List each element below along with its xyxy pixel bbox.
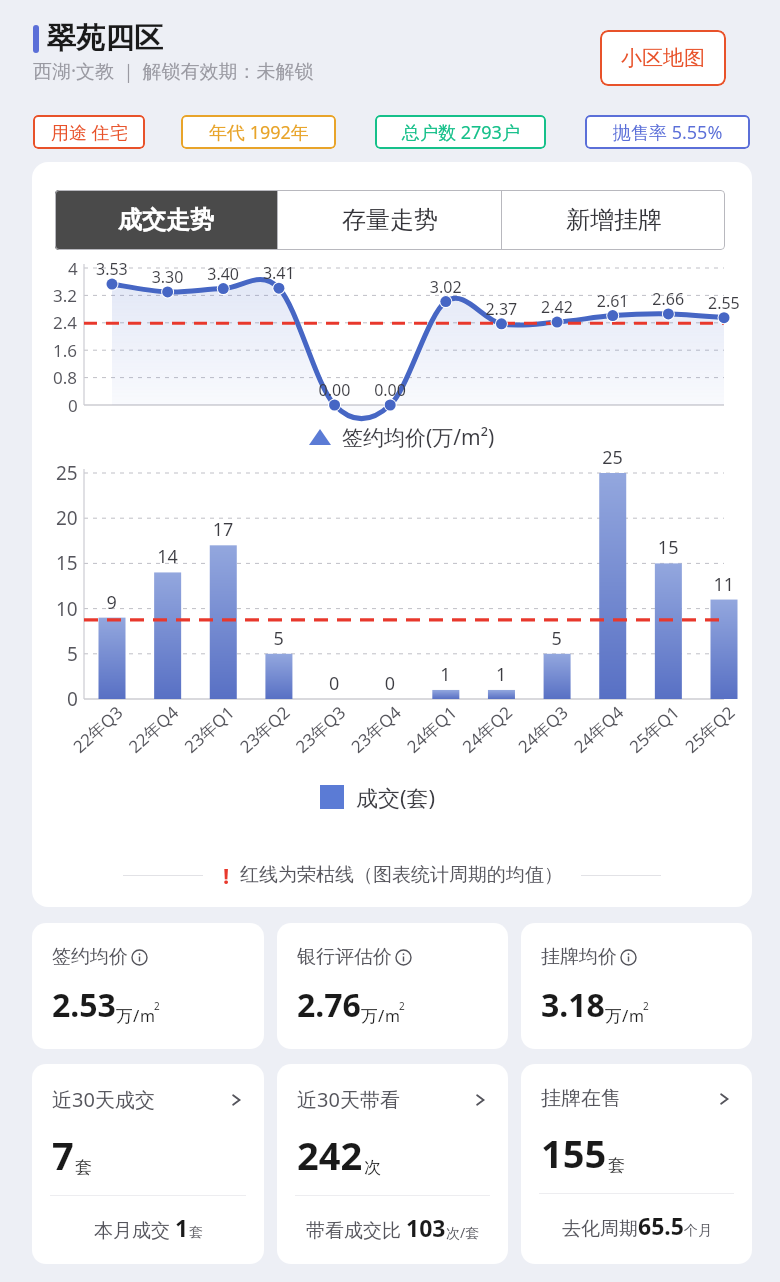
staticText: 红线为荣枯线（图表统计周期的均值） <box>240 863 563 887</box>
staticText: 2 <box>643 999 649 1013</box>
staticText: 1 <box>175 1212 189 1243</box>
staticText: 用途 住宅 <box>51 120 128 145</box>
button[interactable]: 用途 住宅 <box>33 115 145 149</box>
staticText: 套 <box>608 1155 625 1176</box>
staticText: 次/套 <box>446 1223 480 1242</box>
staticText: m <box>629 1005 644 1027</box>
other: 查看更多 <box>716 1091 732 1107</box>
button[interactable]: 银行评估价 <box>277 923 508 1049</box>
staticText: 抛售率 5.55% <box>613 120 723 145</box>
button[interactable]: 挂牌均价 <box>521 923 752 1049</box>
button[interactable]: 存量走势 <box>278 190 501 250</box>
button[interactable]: 近30天成交 <box>32 1064 264 1264</box>
staticText: 103 <box>406 1212 446 1243</box>
staticText: 小区地图 <box>621 45 705 71</box>
staticText: 万/ <box>361 1004 385 1027</box>
button[interactable]: 新增挂牌 <box>502 190 725 250</box>
staticText: 套 <box>75 1157 92 1178</box>
staticText: 近30天成交 <box>52 1086 155 1113</box>
staticText: 2.76 <box>297 983 361 1027</box>
staticText: 万/ <box>605 1004 629 1027</box>
staticText: 3.18 <box>541 983 605 1027</box>
staticText: 套 <box>189 1224 203 1242</box>
staticText: m <box>140 1005 155 1027</box>
staticText: 65.5 <box>638 1210 684 1241</box>
staticText: 年代 1992年 <box>209 120 309 145</box>
staticText: 存量走势 <box>342 205 438 235</box>
button[interactable]: 小区地图 <box>600 30 726 86</box>
staticText: 本月成交 <box>94 1217 175 1243</box>
staticText: 签约均价 <box>52 945 128 969</box>
staticText: 2 <box>399 999 405 1013</box>
staticText: 7 <box>52 1129 74 1181</box>
staticText: 万/ <box>116 1004 140 1027</box>
staticText: 155 <box>541 1127 607 1179</box>
other: 查看更多 <box>472 1092 488 1108</box>
staticText: 西湖·文教 ｜ 解锁有效期：未解锁 <box>33 58 314 84</box>
staticText: ! <box>223 860 230 890</box>
staticText: 总户数 2793户 <box>402 120 520 145</box>
staticText: 带看成交比 <box>306 1217 406 1243</box>
staticText: 翠苑四区 <box>47 20 163 57</box>
button[interactable]: 成交走势 <box>55 190 277 250</box>
staticText: 去化周期 <box>562 1217 638 1241</box>
button[interactable]: 近30天带看 <box>277 1064 508 1264</box>
staticText: 2.53 <box>52 983 116 1027</box>
other: 查看更多 <box>228 1092 244 1108</box>
staticText: 成交走势 <box>118 205 214 235</box>
staticText: 近30天带看 <box>297 1086 400 1113</box>
staticText: 挂牌均价 <box>541 945 617 969</box>
staticText: m <box>385 1005 400 1027</box>
button[interactable]: 总户数 2793户 <box>375 115 546 149</box>
button[interactable]: 签约均价 <box>32 923 264 1049</box>
staticText: 新增挂牌 <box>566 205 662 235</box>
staticText: 挂牌在售 <box>541 1086 621 1111</box>
staticText: 次 <box>364 1157 381 1178</box>
staticText: 银行评估价 <box>297 945 392 969</box>
button[interactable]: 抛售率 5.55% <box>585 115 750 149</box>
button[interactable]: 年代 1992年 <box>181 115 336 149</box>
staticText: 242 <box>297 1129 363 1181</box>
button[interactable]: 挂牌在售 <box>521 1064 752 1264</box>
staticText: 2 <box>154 999 160 1013</box>
staticText: 个月 <box>684 1222 712 1240</box>
